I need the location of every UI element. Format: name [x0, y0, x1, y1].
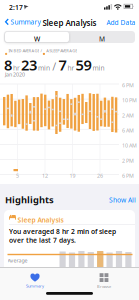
staticText: 6 PM: [122, 82, 134, 89]
staticText: 23: [21, 55, 37, 74]
staticText: 6 PM: [122, 172, 134, 179]
staticText: 5: [16, 172, 19, 179]
button[interactable]: Week or Month: [4, 31, 135, 43]
staticText: 8: [4, 55, 12, 74]
staticText: /: [41, 48, 42, 53]
staticText: 7: [58, 55, 66, 74]
button[interactable]: Add Data: [106, 18, 135, 27]
staticText: Highlights: [5, 193, 54, 206]
staticText: Sleep Analysis: [17, 215, 63, 224]
button[interactable]: Summary: [5, 271, 65, 291]
staticText: 10 AM: [122, 142, 137, 149]
staticText: IN BED AVERAGE: [8, 48, 39, 53]
staticText: hr: [67, 63, 74, 72]
staticText: /: [52, 59, 56, 73]
staticText: ASLEEP AVERAGE: [46, 48, 77, 53]
staticText: Browse: [97, 284, 111, 289]
staticText: Jan 2020: [5, 71, 25, 78]
button[interactable]: Show All: [109, 195, 136, 204]
staticText: hr: [13, 63, 20, 72]
staticText: 19: [69, 172, 75, 179]
staticText: M: [99, 34, 105, 43]
button[interactable]: Back: [5, 17, 40, 26]
staticText: 10 PM: [122, 97, 137, 104]
staticText: min: [38, 63, 50, 72]
staticText: Sleep Analysis: [42, 17, 96, 28]
staticText: W: [34, 34, 40, 43]
button[interactable]: Browse: [74, 271, 134, 291]
button[interactable]: Sleep Analysis: [4, 210, 135, 280]
staticText: Summary: [10, 17, 40, 26]
staticText: Average: [7, 257, 27, 264]
staticText: 6 AM: [122, 127, 134, 134]
staticText: min: [92, 63, 104, 72]
staticText: Summary: [26, 283, 44, 288]
staticText: 2:17: [9, 3, 23, 12]
staticText: Show All: [109, 195, 136, 204]
staticText: 2 AM: [122, 112, 134, 119]
staticText: You averaged 8 hr 2 min of sleep over th…: [9, 227, 116, 245]
staticText: 12: [42, 172, 48, 179]
staticText: 59: [75, 55, 91, 74]
staticText: 26: [97, 172, 103, 179]
staticText: Add Data: [106, 18, 135, 27]
staticText: 2 PM: [122, 157, 134, 164]
